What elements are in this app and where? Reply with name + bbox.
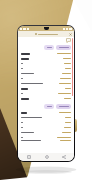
button[interactable]: Back [58,153,69,161]
button[interactable] [18,76,74,81]
button[interactable] [18,125,74,130]
button[interactable] [18,91,74,96]
button[interactable] [44,45,54,50]
button[interactable] [18,130,74,135]
button[interactable] [44,104,54,109]
button[interactable] [18,51,74,56]
button[interactable] [18,110,74,115]
button[interactable]: Comments [66,38,71,43]
button[interactable] [18,56,74,61]
button[interactable] [18,135,74,140]
button[interactable] [18,115,74,120]
button[interactable] [18,86,74,91]
button[interactable] [18,120,74,125]
button[interactable] [56,104,71,109]
button[interactable] [18,71,74,76]
button[interactable]: Recents [23,153,34,161]
button[interactable] [18,66,74,71]
button[interactable] [18,81,74,86]
button[interactable]: Home [41,153,52,161]
button[interactable] [18,61,74,66]
button[interactable] [18,96,74,101]
button[interactable]: Close [18,31,74,37]
button[interactable]: Close [69,33,72,36]
button[interactable] [18,140,74,141]
button[interactable] [56,45,71,50]
